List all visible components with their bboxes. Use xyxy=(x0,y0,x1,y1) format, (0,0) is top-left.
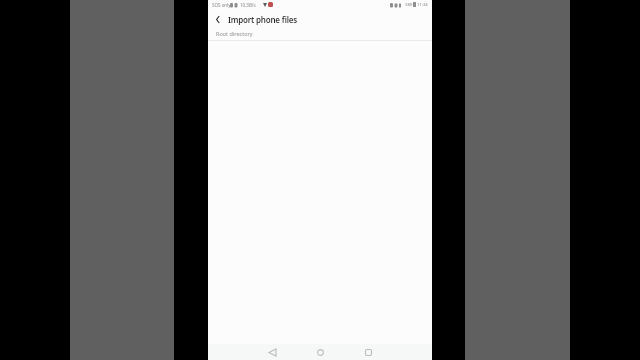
button[interactable] xyxy=(248,344,296,360)
button[interactable] xyxy=(208,9,228,29)
staticText: 380 xyxy=(405,2,413,8)
staticText: Import phone files xyxy=(228,14,298,25)
staticText: 11:34 xyxy=(417,2,428,8)
button[interactable] xyxy=(296,344,344,360)
staticText: SOS only xyxy=(212,2,231,8)
button[interactable] xyxy=(344,344,392,360)
staticText: Root directory xyxy=(216,30,253,37)
staticText: 10.3B/s xyxy=(240,2,256,8)
